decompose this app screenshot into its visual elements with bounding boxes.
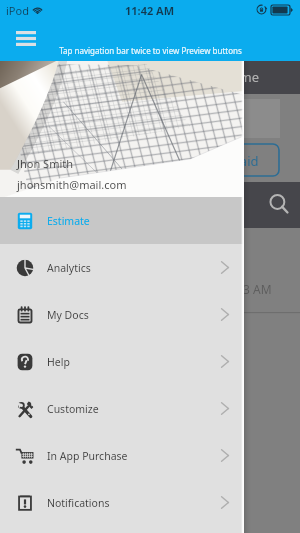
staticText: 11:42 AM (125, 3, 175, 18)
button[interactable]: Help (0, 338, 244, 385)
staticText: Help (47, 355, 70, 369)
staticText: Jhon Smith (17, 156, 74, 171)
staticText: Home (222, 68, 259, 86)
button[interactable]: Analytics (0, 244, 244, 291)
button[interactable]: Estimate (0, 197, 244, 244)
staticText: 3 AM (243, 281, 272, 297)
staticText: In App Purchase (47, 449, 128, 463)
staticText: Tap navigation bar twice to view Preview… (59, 45, 242, 56)
button[interactable]: Notifications (0, 479, 244, 526)
button[interactable]: Customize (0, 385, 244, 432)
button[interactable]: Open navigation drawer (8, 23, 44, 54)
staticText: My Docs (47, 308, 89, 322)
staticText: Customize (47, 402, 99, 416)
staticText: Estimate (47, 214, 90, 228)
button[interactable]: My Docs (0, 291, 244, 338)
staticText: Notifications (47, 496, 110, 510)
staticText: jhonsmith@mail.com (17, 177, 127, 192)
staticText: Analytics (47, 261, 91, 275)
button[interactable]: In App Purchase (0, 432, 244, 479)
staticText: iPod (6, 3, 29, 18)
staticText: Paid (232, 152, 259, 170)
